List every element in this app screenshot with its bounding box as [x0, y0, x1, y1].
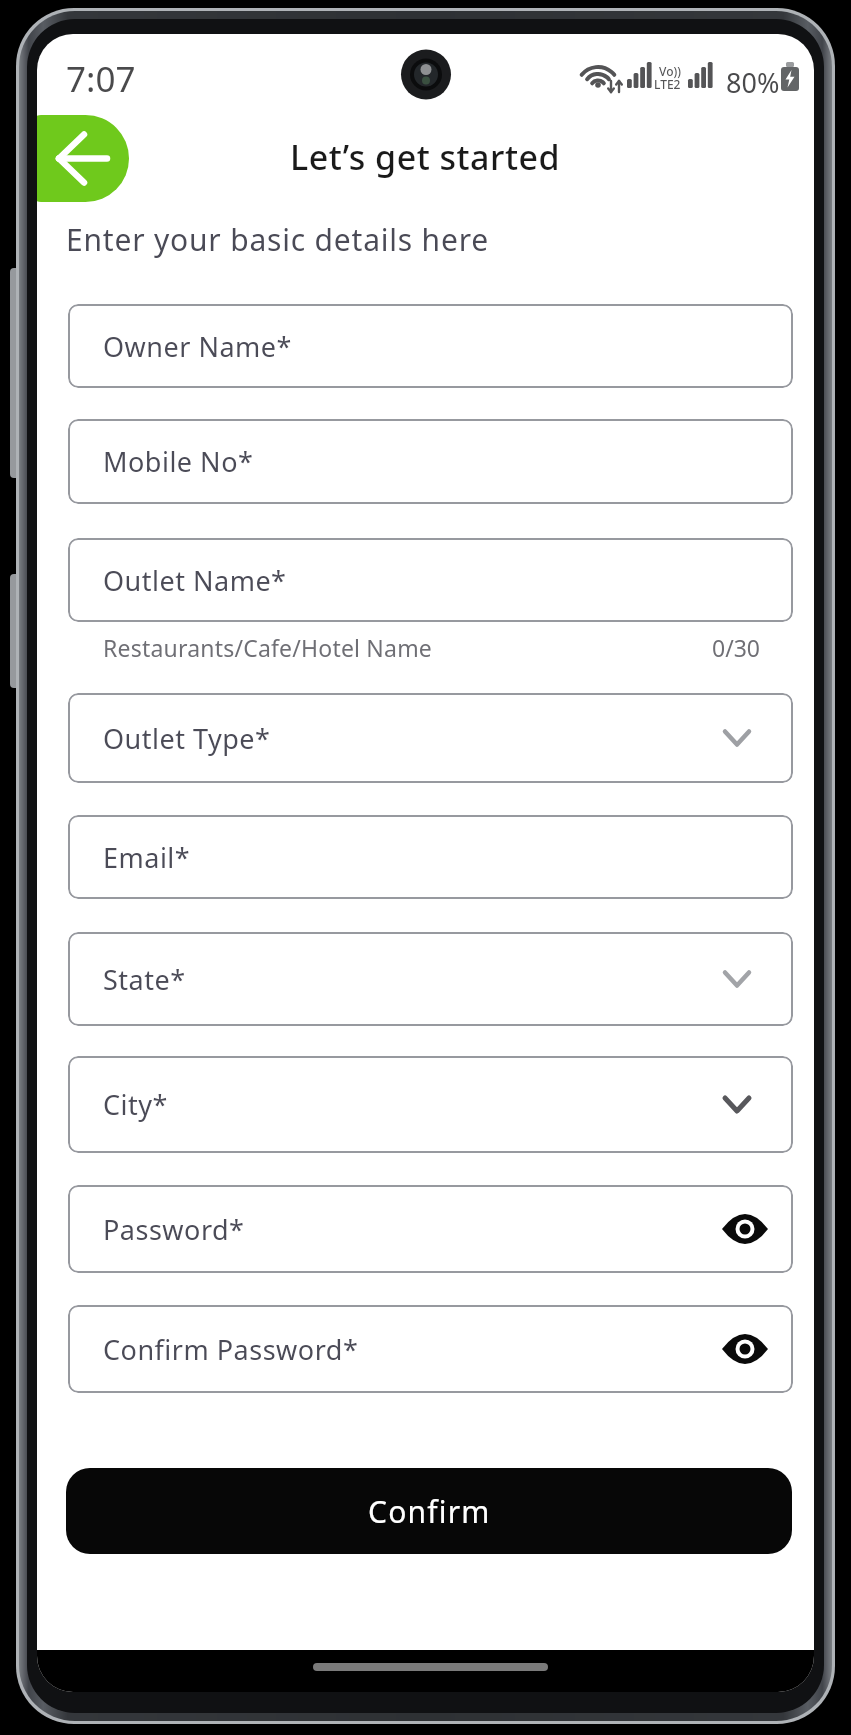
staticText: Outlet Name*: [103, 562, 287, 599]
button[interactable]: Password*: [68, 1185, 793, 1273]
button[interactable]: Owner Name*: [68, 304, 793, 388]
staticText: Outlet Type*: [103, 720, 271, 757]
button[interactable]: Outlet Type*: [68, 693, 793, 783]
staticText: Let’s get started: [290, 134, 561, 180]
button[interactable]: Confirm: [66, 1468, 792, 1554]
staticText: Confirm Password*: [103, 1331, 359, 1368]
staticText: Confirm: [368, 1491, 491, 1532]
button[interactable]: Email*: [68, 815, 793, 899]
staticText: Owner Name*: [103, 328, 292, 365]
button[interactable]: Outlet Name*: [68, 538, 793, 622]
staticText: Email*: [103, 839, 191, 876]
staticText: Enter your basic details here: [66, 219, 489, 260]
staticText: Mobile No*: [103, 443, 254, 480]
staticText: Vo)): [659, 63, 681, 79]
button[interactable]: Mobile No*: [68, 419, 793, 504]
button[interactable]: Confirm Password*: [68, 1305, 793, 1393]
staticText: City*: [103, 1086, 168, 1123]
staticText: 0/30: [712, 632, 761, 663]
staticText: Restaurants/Cafe/Hotel Name: [103, 632, 433, 663]
staticText: Password*: [103, 1211, 245, 1248]
button[interactable]: State*: [68, 932, 793, 1026]
staticText: 80%: [726, 64, 780, 101]
staticText: 7:07: [66, 55, 136, 103]
staticText: LTE2: [654, 76, 681, 92]
staticText: State*: [103, 961, 186, 998]
button[interactable]: City*: [68, 1056, 793, 1153]
button[interactable]: [37, 115, 129, 202]
